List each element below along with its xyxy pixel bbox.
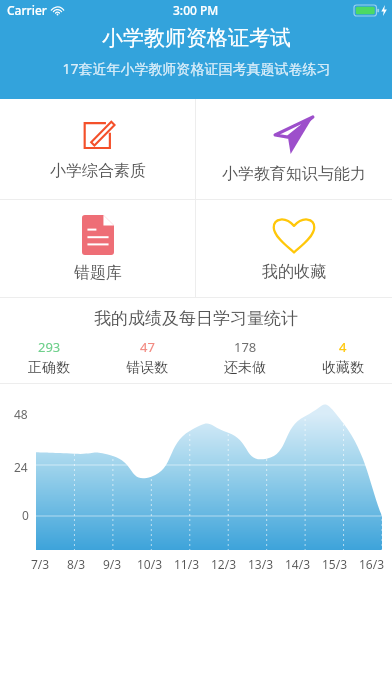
button[interactable]: 小学综合素质 bbox=[0, 99, 195, 199]
staticText: 16/3 bbox=[359, 556, 385, 572]
staticText: Carrier bbox=[7, 2, 47, 18]
staticText: 错题库 bbox=[74, 263, 122, 283]
staticText: 正确数 bbox=[28, 359, 70, 377]
staticText: 0 bbox=[22, 507, 29, 523]
staticText: 还未做 bbox=[224, 359, 266, 377]
other: 错题库 bbox=[82, 215, 114, 255]
button[interactable]: 小学教育知识与能力 bbox=[196, 99, 392, 199]
staticText: 我的收藏 bbox=[262, 262, 326, 282]
staticText: 11/3 bbox=[174, 556, 200, 572]
staticText: 17套近年小学教师资格证国考真题试卷练习 bbox=[62, 59, 331, 78]
staticText: 我的成绩及每日学习量统计 bbox=[94, 308, 298, 329]
staticText: 9/3 bbox=[103, 556, 122, 572]
staticText: 错误数 bbox=[126, 359, 168, 377]
button[interactable]: 4 bbox=[294, 338, 392, 377]
staticText: 小学教师资格证考试 bbox=[102, 25, 291, 51]
staticText: 4 bbox=[339, 338, 347, 356]
staticText: 15/3 bbox=[322, 556, 348, 572]
button[interactable]: 178 bbox=[196, 338, 294, 377]
other: 我的收藏 bbox=[272, 216, 316, 254]
staticText: 小学教育知识与能力 bbox=[222, 164, 366, 184]
button[interactable]: 错题库 bbox=[0, 200, 195, 297]
button[interactable]: 293 bbox=[0, 338, 98, 377]
staticText: 8/3 bbox=[67, 556, 86, 572]
staticText: 178 bbox=[234, 338, 257, 356]
staticText: 47 bbox=[140, 338, 155, 356]
staticText: 10/3 bbox=[137, 556, 163, 572]
button[interactable]: 我的收藏 bbox=[196, 200, 392, 297]
staticText: 13/3 bbox=[248, 556, 274, 572]
staticText: 293 bbox=[38, 338, 61, 356]
staticText: 小学综合素质 bbox=[50, 161, 146, 181]
staticText: 12/3 bbox=[211, 556, 237, 572]
other: 小学教育知识与能力 bbox=[273, 114, 315, 156]
staticText: 24 bbox=[14, 459, 28, 475]
button[interactable]: 47 bbox=[98, 338, 196, 377]
staticText: 14/3 bbox=[285, 556, 311, 572]
other: 小学综合素质 bbox=[80, 117, 116, 153]
staticText: 48 bbox=[14, 406, 28, 422]
staticText: 7/3 bbox=[31, 556, 50, 572]
staticText: 收藏数 bbox=[322, 359, 364, 377]
staticText: 3:00 PM bbox=[173, 2, 219, 18]
